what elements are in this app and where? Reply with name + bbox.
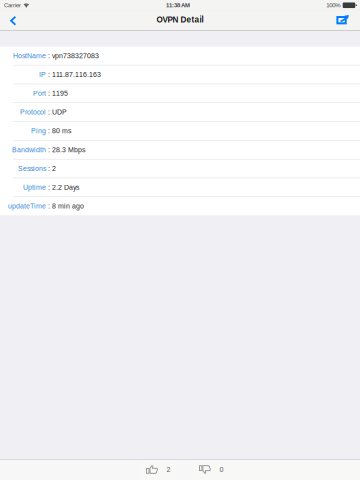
staticText: vpn738327083 [52, 52, 99, 60]
staticText: Sessions [18, 165, 46, 172]
staticText: 111.87.116.163 [52, 71, 101, 78]
staticText: Ping [31, 127, 46, 135]
staticText: Bandwidth [12, 146, 46, 154]
staticText: : [46, 52, 52, 60]
staticText: : [46, 183, 52, 191]
staticText: : [46, 146, 52, 154]
staticText: Protocol [20, 108, 46, 116]
button[interactable]: Back [0, 10, 28, 31]
staticText: : [46, 202, 52, 210]
staticText: : [46, 89, 52, 97]
staticText: Port [33, 89, 46, 97]
staticText: updateTime [8, 202, 46, 210]
staticText: : [46, 165, 52, 172]
staticText: UDP [52, 108, 67, 116]
staticText: 1195 [52, 89, 68, 97]
staticText: : [46, 127, 52, 135]
button[interactable]: Share [324, 10, 360, 31]
staticText: 0 [219, 465, 223, 473]
staticText: Carrier [4, 2, 21, 9]
staticText: HostName [13, 52, 46, 60]
button[interactable]: 0 [193, 459, 229, 480]
staticText: OVPN Detail [156, 15, 203, 24]
staticText: : [46, 108, 52, 116]
staticText: 100% [326, 2, 340, 9]
staticText: 11:38 AM [166, 2, 190, 9]
staticText: 80 ms [52, 127, 71, 135]
staticText: Uptime [23, 183, 46, 191]
staticText: 2 [167, 465, 171, 473]
staticText: IP [39, 71, 46, 78]
staticText: 2 [52, 165, 56, 172]
button[interactable]: 2 [140, 459, 177, 480]
staticText: 2.2 Days [52, 183, 79, 191]
staticText: 8 min ago [52, 202, 84, 210]
staticText: 28.3 Mbps [52, 146, 85, 154]
staticText: : [46, 71, 52, 78]
